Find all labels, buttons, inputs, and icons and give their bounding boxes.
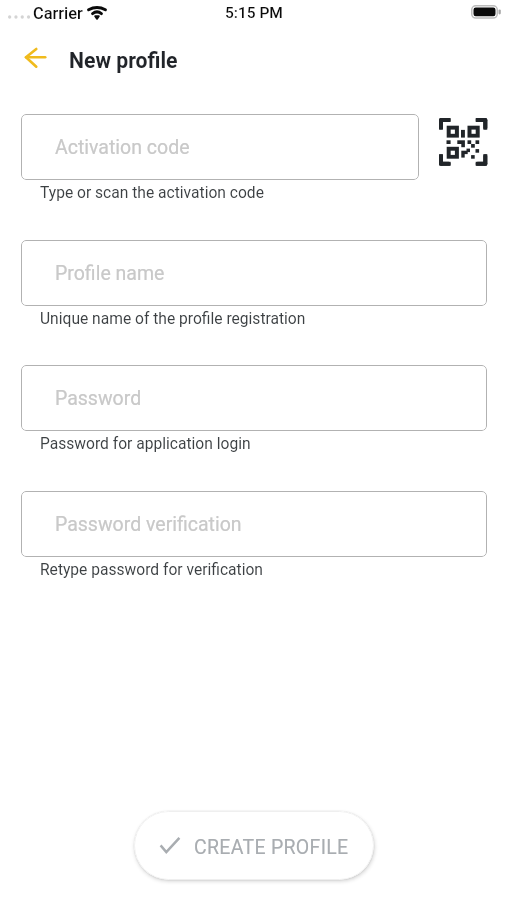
staticText: Unique name of the profile registration: [40, 310, 306, 328]
button[interactable]: Profile name: [21, 240, 487, 306]
staticText: Retype password for verification: [40, 561, 263, 579]
staticText: Password for application login: [40, 435, 251, 453]
staticText: Password verification: [55, 513, 242, 536]
staticText: Activation code: [55, 136, 190, 159]
staticText: Password: [55, 387, 142, 410]
button[interactable]: CREATE PROFILE: [134, 811, 374, 880]
button[interactable]: Activation code: [21, 114, 419, 180]
button[interactable]: Scan QR code: [427, 114, 499, 180]
staticText: Carrier: [33, 4, 83, 23]
staticText: 5:15 PM: [225, 4, 283, 22]
staticText: New profile: [69, 48, 178, 73]
staticText: Type or scan the activation code: [40, 184, 264, 202]
staticText: CREATE PROFILE: [194, 836, 349, 859]
staticText: Profile name: [55, 262, 165, 285]
button[interactable]: Password verification: [21, 491, 487, 557]
button[interactable]: Back: [13, 41, 57, 74]
button[interactable]: Password: [21, 365, 487, 431]
